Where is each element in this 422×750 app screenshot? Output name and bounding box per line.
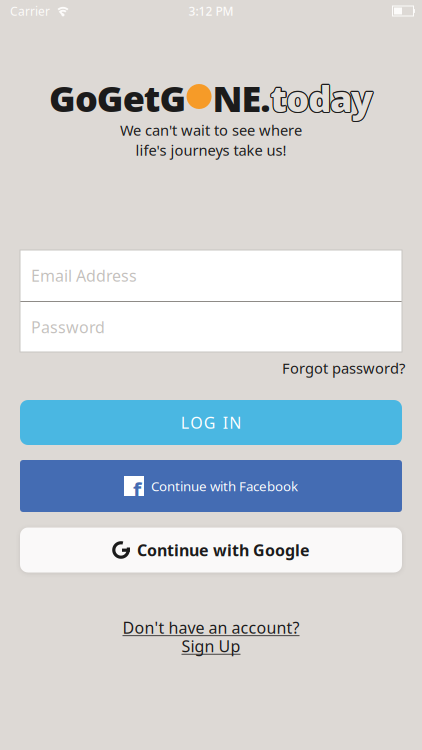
staticText: Continue with Facebook (151, 477, 298, 495)
staticText: Continue with Google (137, 539, 310, 561)
staticText: Password (31, 316, 105, 338)
button[interactable]: Don't have an account? (122, 618, 299, 655)
staticText: life's journeys take us! (135, 140, 286, 160)
staticText: today (270, 75, 373, 123)
staticText: today (271, 74, 374, 122)
staticText: 3:12 PM (188, 3, 233, 19)
staticText: today (270, 75, 372, 123)
button[interactable]: Password (20, 302, 402, 352)
staticText: Sign Up (181, 635, 240, 657)
button[interactable]: Email Address (20, 250, 402, 301)
staticText: today (271, 73, 374, 121)
button[interactable]: LOG IN (20, 400, 402, 445)
staticText: Don't have an account? (122, 617, 299, 638)
staticText: We can't wait to see where (120, 120, 302, 140)
staticText: f (133, 476, 141, 504)
staticText: LOG IN (181, 412, 241, 433)
staticText: today (270, 73, 373, 121)
button[interactable]: Forgot password? (282, 360, 405, 376)
button[interactable]: Continue with Google (20, 527, 402, 572)
staticText: today (270, 74, 373, 122)
staticText: today (270, 73, 372, 121)
button[interactable]: f (20, 460, 402, 512)
staticText: Carrier (10, 3, 50, 19)
staticText: today (271, 75, 374, 123)
staticText: GoGetG (49, 74, 186, 122)
staticText: NE. (212, 74, 270, 122)
staticText: today (269, 74, 372, 122)
staticText: Forgot password? (282, 358, 405, 378)
staticText: Email Address (31, 265, 137, 286)
